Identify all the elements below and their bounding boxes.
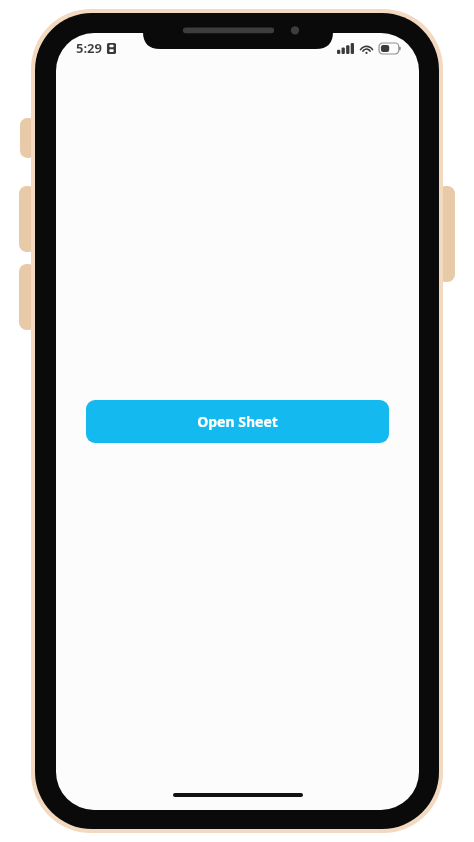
staticText: Open Sheet: [197, 412, 278, 431]
staticText: 5:29: [76, 39, 102, 57]
button[interactable]: Open Sheet: [86, 400, 389, 443]
other: Home indicator: [173, 793, 303, 797]
